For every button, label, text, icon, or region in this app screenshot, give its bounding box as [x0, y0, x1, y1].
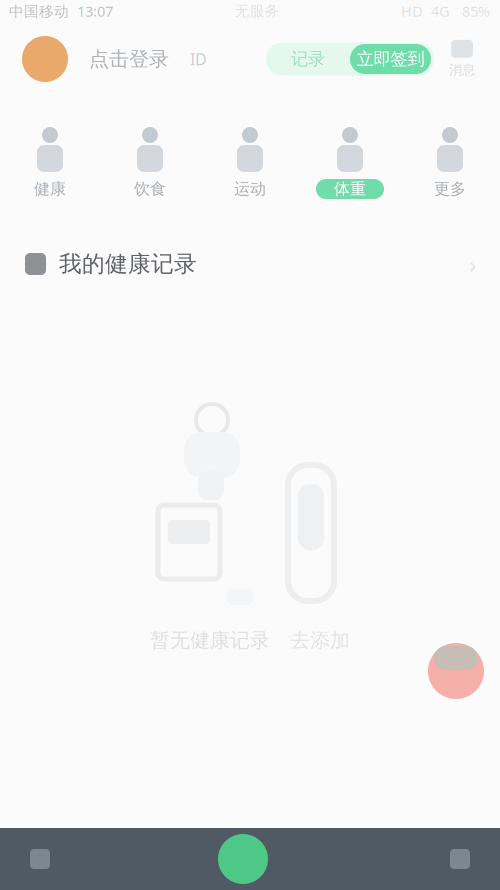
button[interactable]: Messages — [434, 36, 490, 82]
button[interactable]: 健康 — [0, 96, 100, 212]
button[interactable]: 立即签到 — [350, 44, 431, 74]
staticText: 我的健康记录 — [59, 250, 197, 278]
button[interactable]: 饮食 — [100, 96, 200, 212]
button[interactable]: 我的健康记录 — [0, 212, 500, 316]
staticText: 健康 — [34, 179, 66, 199]
staticText: 运动 — [234, 179, 266, 199]
staticText: HD 4G 85% — [401, 1, 490, 21]
staticText: 点击登录 — [89, 47, 169, 71]
staticText: 中国移动 13:07 — [9, 1, 113, 21]
button[interactable]: Home — [218, 834, 268, 884]
button[interactable]: Recents — [12, 828, 68, 890]
button[interactable]: 记录 — [266, 42, 350, 75]
button[interactable]: 运动 — [200, 96, 300, 212]
button[interactable]: Back — [432, 828, 488, 890]
staticText: 去添加 — [290, 628, 350, 653]
staticText: 记录 — [291, 48, 325, 70]
staticText: 体重 — [334, 179, 366, 199]
staticText: 无服务 — [234, 2, 279, 20]
staticText: 饮食 — [134, 179, 166, 199]
button[interactable]: 体重 — [300, 96, 400, 212]
button[interactable]: 点击登录 — [22, 36, 207, 82]
staticText: 更多 — [434, 179, 466, 199]
staticText: › — [469, 248, 476, 280]
button[interactable]: Add record — [428, 640, 484, 702]
button[interactable]: 更多 — [400, 96, 500, 212]
staticText: 消息 — [449, 62, 475, 78]
staticText: 立即签到 — [356, 48, 424, 70]
staticText: ID — [190, 48, 207, 70]
staticText: 暂无健康记录 — [150, 628, 270, 653]
